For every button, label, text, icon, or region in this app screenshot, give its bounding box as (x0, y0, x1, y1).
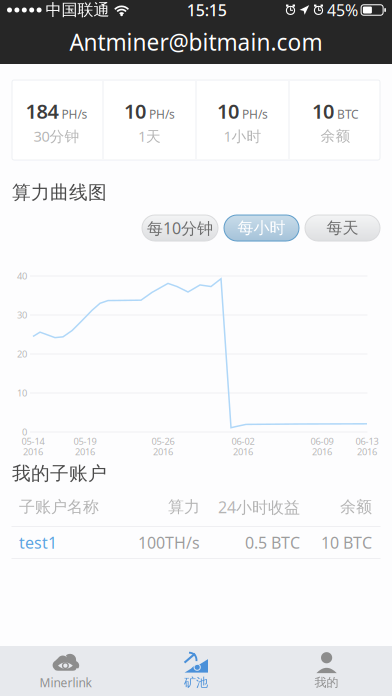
staticText: 2016 (153, 445, 173, 458)
button[interactable]: 我的 (261, 646, 392, 696)
staticText: 10 (217, 98, 239, 124)
staticText: 1天 (138, 126, 161, 146)
staticText: 10 (124, 98, 146, 124)
staticText: 余额 (340, 497, 372, 517)
staticText: 每天 (326, 218, 358, 238)
staticText: 05-14 (21, 435, 44, 447)
staticText: 20 (17, 348, 27, 360)
staticText: 05-26 (151, 435, 174, 447)
staticText: PH/s (61, 106, 87, 122)
button[interactable]: 每10分钟 (142, 215, 218, 241)
staticText: 06-13 (355, 435, 378, 447)
staticText: 我的 (315, 675, 339, 690)
staticText: PH/s (149, 106, 175, 122)
staticText: 0.5 BTC (245, 532, 300, 553)
staticText: Minerlink (39, 674, 91, 690)
button[interactable]: 每小时 (224, 215, 299, 241)
staticText: 45% (327, 0, 358, 21)
button[interactable]: 矿池 (131, 646, 261, 696)
staticText: 算力 (168, 497, 200, 517)
staticText: 10 (312, 98, 334, 124)
staticText: 2016 (357, 445, 377, 458)
staticText: 30 (17, 309, 27, 321)
staticText: 2016 (233, 445, 253, 458)
staticText: 2016 (312, 445, 332, 458)
staticText: 184 (25, 98, 58, 124)
staticText: 10 (17, 387, 27, 399)
button[interactable]: 每天 (305, 215, 380, 241)
staticText: Antminer@bitmain.com (69, 27, 322, 57)
staticText: test1 (19, 532, 57, 553)
staticText: BTC (337, 106, 359, 122)
staticText: 40 (17, 270, 27, 282)
staticText: 每小时 (237, 218, 285, 238)
staticText: 06-02 (231, 435, 254, 447)
staticText: 10 BTC (321, 532, 372, 553)
button[interactable]: Antminer@bitmain.com (0, 20, 392, 64)
staticText: 30分钟 (33, 126, 79, 146)
staticText: 0 (22, 426, 27, 438)
staticText: 2016 (23, 445, 43, 458)
staticText: 每10分钟 (147, 217, 213, 239)
staticText: 15:15 (187, 0, 227, 21)
staticText: 100TH/s (138, 532, 200, 553)
staticText: 2016 (75, 445, 95, 458)
staticText: 中国联通 (46, 0, 110, 20)
staticText: 子账户名称 (19, 497, 99, 517)
staticText: 06-09 (310, 435, 333, 447)
staticText: 我的子账户 (12, 462, 107, 485)
button[interactable]: test1 (0, 527, 392, 558)
staticText: PH/s (242, 106, 268, 122)
staticText: 24小时收益 (218, 496, 300, 518)
staticText: 算力曲线图 (12, 181, 107, 204)
staticText: 05-19 (73, 435, 96, 447)
staticText: 1小时 (223, 126, 261, 146)
staticText: 矿池 (184, 675, 208, 690)
button[interactable]: Minerlink (0, 646, 131, 696)
staticText: 余额 (320, 127, 350, 145)
